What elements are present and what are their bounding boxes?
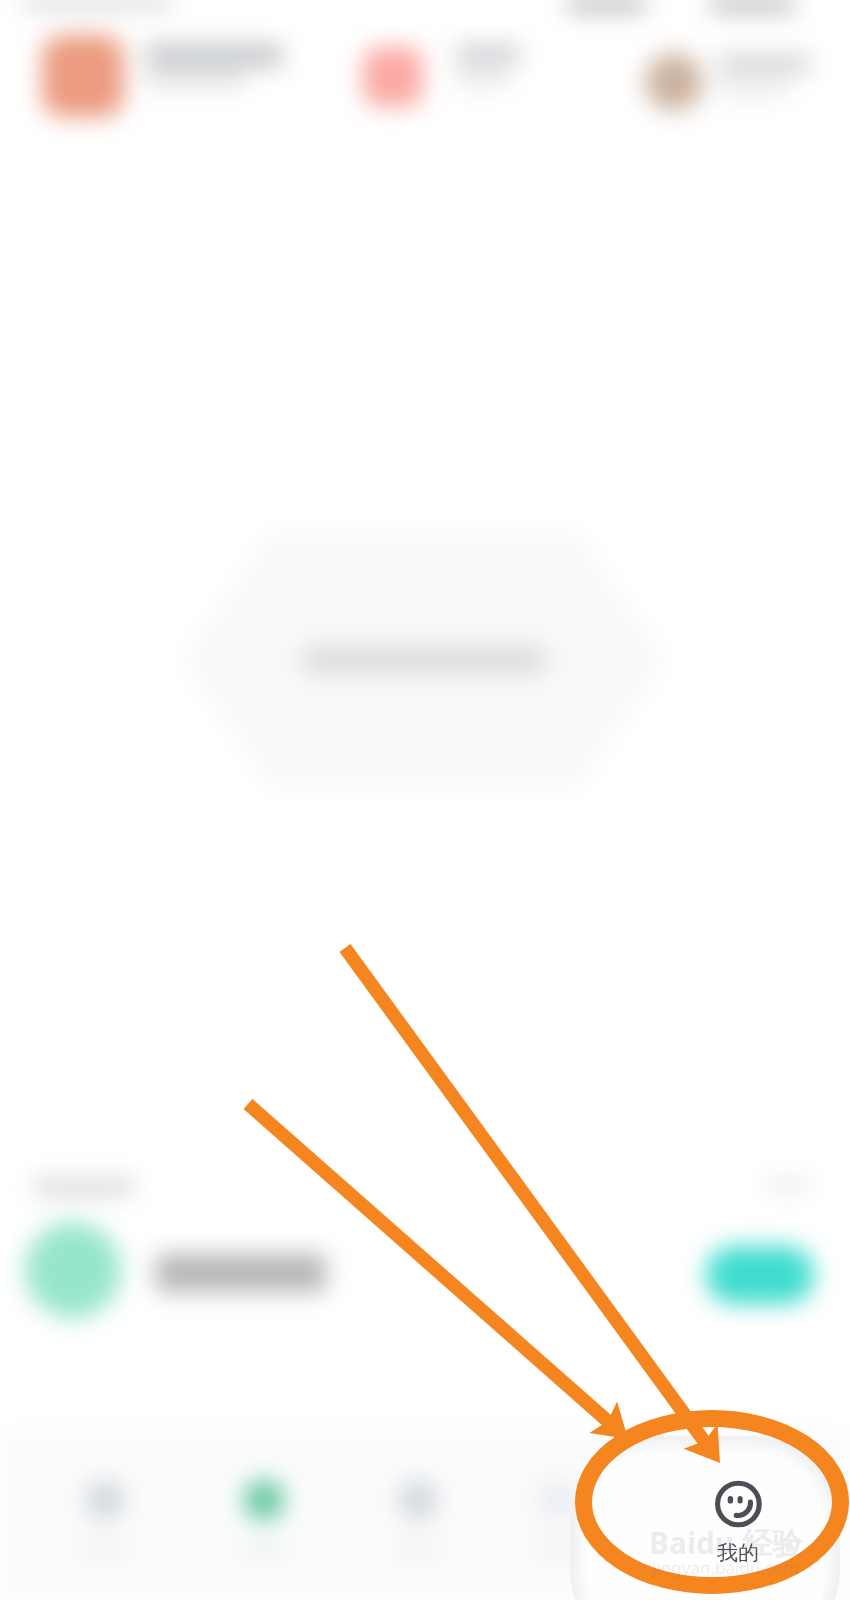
staticText: Baidu 经验 [649,1522,803,1563]
button[interactable]: 我的 [0,0,850,1600]
staticText: jingyan.baidu.com [652,1556,800,1579]
staticText: 我的 [717,1540,759,1566]
